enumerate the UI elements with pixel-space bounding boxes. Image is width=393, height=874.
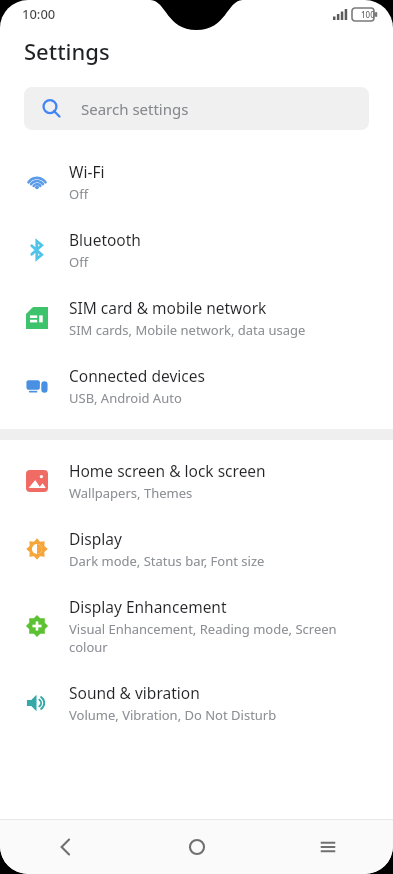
button[interactable]: Wi-Fi: [0, 148, 393, 216]
button[interactable]: Display: [0, 515, 393, 583]
button[interactable]: Recents: [262, 820, 393, 874]
staticText: SIM card & mobile network: [69, 297, 267, 318]
staticText: Display Enhancement: [69, 596, 227, 617]
button[interactable]: Display Enhancement: [0, 583, 393, 669]
staticText: SIM cards, Mobile network, data usage: [69, 321, 306, 339]
button[interactable]: Connected devices: [0, 352, 393, 420]
staticText: Volume, Vibration, Do Not Disturb: [69, 706, 277, 724]
staticText: Off: [69, 253, 89, 271]
staticText: Display: [69, 528, 122, 549]
button[interactable]: Search: [24, 87, 369, 130]
staticText: Bluetooth: [69, 229, 141, 250]
button[interactable]: Home screen & lock screen: [0, 447, 393, 515]
button[interactable]: SIM card & mobile network: [0, 284, 393, 352]
other: Search: [42, 99, 61, 118]
staticText: Dark mode, Status bar, Font size: [69, 552, 265, 570]
staticText: Search settings: [81, 99, 189, 119]
staticText: Visual Enhancement, Reading mode, Screen…: [69, 620, 337, 656]
staticText: 100: [361, 9, 375, 20]
staticText: Wi-Fi: [69, 161, 105, 182]
button[interactable]: Back: [0, 820, 131, 874]
staticText: 10:00: [22, 5, 56, 23]
staticText: Wallpapers, Themes: [69, 484, 193, 502]
staticText: Off: [69, 185, 89, 203]
staticText: Settings: [24, 36, 110, 66]
button[interactable]: Bluetooth: [0, 216, 393, 284]
staticText: Connected devices: [69, 365, 205, 386]
staticText: Sound & vibration: [69, 682, 200, 703]
staticText: Home screen & lock screen: [69, 460, 266, 481]
button[interactable]: Home: [131, 820, 262, 874]
button[interactable]: Sound & vibration: [0, 669, 393, 737]
staticText: USB, Android Auto: [69, 389, 182, 407]
